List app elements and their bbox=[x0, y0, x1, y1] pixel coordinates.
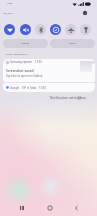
staticText: Silent notifications bbox=[6, 52, 28, 55]
button[interactable]: Recents bbox=[15, 203, 29, 212]
button[interactable]: Internet bbox=[3, 39, 48, 48]
button[interactable]: Back bbox=[69, 203, 83, 212]
button[interactable]: Home bbox=[43, 203, 57, 212]
button[interactable]: Media bbox=[50, 39, 95, 48]
button[interactable]: Settings bbox=[81, 9, 89, 17]
staticText: Google bbox=[10, 86, 20, 90]
staticText: Tue, Jun 9 bbox=[3, 12, 13, 15]
staticText: Samsung capture bbox=[10, 60, 33, 64]
staticText: Tap here to open it in Gallery bbox=[6, 74, 43, 78]
button[interactable]: Clear bbox=[78, 95, 87, 99]
button[interactable]: Wi-Fi bbox=[4, 24, 15, 35]
button[interactable]: Notification settings bbox=[50, 95, 82, 99]
button[interactable]: Google bbox=[3, 83, 95, 92]
staticText: 13:30 bbox=[39, 86, 46, 90]
button[interactable]: Airplane mode bbox=[65, 24, 76, 35]
staticText: 12:53 bbox=[7, 2, 13, 5]
staticText: Media bbox=[69, 42, 76, 45]
staticText: 18° in Salta bbox=[22, 86, 37, 90]
staticText: Internet bbox=[21, 42, 30, 45]
button[interactable]: Location bbox=[50, 24, 61, 35]
button[interactable]: Flashlight bbox=[80, 24, 91, 35]
staticText: Screenshot saved bbox=[6, 68, 34, 72]
button[interactable]: Sound off bbox=[20, 24, 31, 35]
button[interactable]: Samsung capture bbox=[3, 59, 95, 82]
button[interactable]: Bluetooth bbox=[35, 24, 46, 35]
staticText: 13:53 bbox=[35, 60, 42, 64]
